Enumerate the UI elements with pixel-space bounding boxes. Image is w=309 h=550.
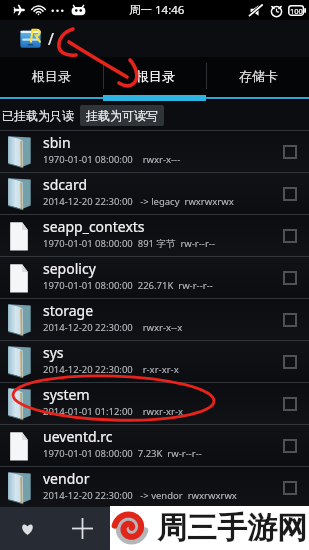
staticText: 1970-01-01 08:00:00 891 字节 rw-r--r-- (43, 237, 215, 250)
button[interactable]: vendor (0, 467, 309, 508)
staticText: vendor (43, 469, 90, 488)
button[interactable]: Select sbin (271, 131, 309, 172)
staticText: seapp_contexts (43, 217, 145, 236)
staticText: system (43, 385, 90, 404)
button[interactable]: ueventd.rc (0, 425, 309, 466)
button[interactable]: Select storage (271, 299, 309, 340)
button[interactable]: sys (0, 341, 309, 382)
staticText: storage (43, 301, 94, 320)
button[interactable]: storage (0, 299, 309, 340)
button[interactable]: sbin (0, 131, 309, 172)
button[interactable]: 根目录 (0, 57, 103, 95)
button[interactable]: Select ueventd.rc (271, 425, 309, 466)
button[interactable]: Select vendor (271, 467, 309, 508)
button[interactable]: 挂载为可读写 (80, 105, 164, 126)
staticText: 2014-12-20 22:30:00 -> vendor rwxrwxrwx (43, 489, 237, 502)
staticText: sbin (43, 133, 71, 152)
button[interactable]: Select sys (271, 341, 309, 382)
button[interactable]: Add (55, 507, 110, 550)
staticText: 100 (290, 6, 303, 16)
button[interactable]: Select seapp_contexts (271, 215, 309, 256)
button[interactable]: sepolicy (0, 257, 309, 298)
button[interactable]: Select sdcard (271, 173, 309, 214)
staticText: 1970-01-01 08:00:00 7.23K rw-r--r-- (43, 447, 202, 460)
button[interactable]: system (0, 383, 309, 424)
staticText: 2014-01-01 01:12:00 rwxr-xr-x (43, 405, 184, 418)
staticText: 周三手游网 (157, 509, 307, 547)
staticText: 根目录 (136, 68, 175, 84)
staticText: 2014-12-20 22:30:00 -> legacy rwxrwxrwx (43, 195, 234, 208)
staticText: 2014-12-20 22:30:00 rwxr-x--x (43, 321, 183, 334)
staticText: 1970-01-01 08:00:00 rwxr-x--- (43, 153, 181, 166)
staticText: 2014-12-20 22:30:00 r-xr-xr-x (43, 363, 179, 376)
staticText: 挂载为可读写 (86, 108, 158, 123)
staticText: 根目录 (32, 68, 71, 84)
staticText: / (48, 28, 54, 50)
staticText: 1970-01-01 08:00:00 226.71K rw-r--r-- (43, 279, 213, 292)
button[interactable]: Select sepolicy (271, 257, 309, 298)
staticText: sys (43, 343, 64, 362)
button[interactable]: 根目录 (104, 57, 206, 95)
button[interactable]: Select system (271, 383, 309, 424)
button[interactable]: sdcard (0, 173, 309, 214)
button[interactable]: Favorites (0, 507, 55, 550)
staticText: 存储卡 (239, 68, 278, 84)
button[interactable]: 存储卡 (207, 57, 309, 95)
button[interactable]: seapp_contexts (0, 215, 309, 256)
staticText: 已挂载为只读 (2, 108, 74, 123)
staticText: ueventd.rc (43, 427, 113, 446)
staticText: 周一 14:46 (129, 2, 185, 18)
staticText: sdcard (43, 175, 88, 194)
staticText: sepolicy (43, 259, 96, 278)
